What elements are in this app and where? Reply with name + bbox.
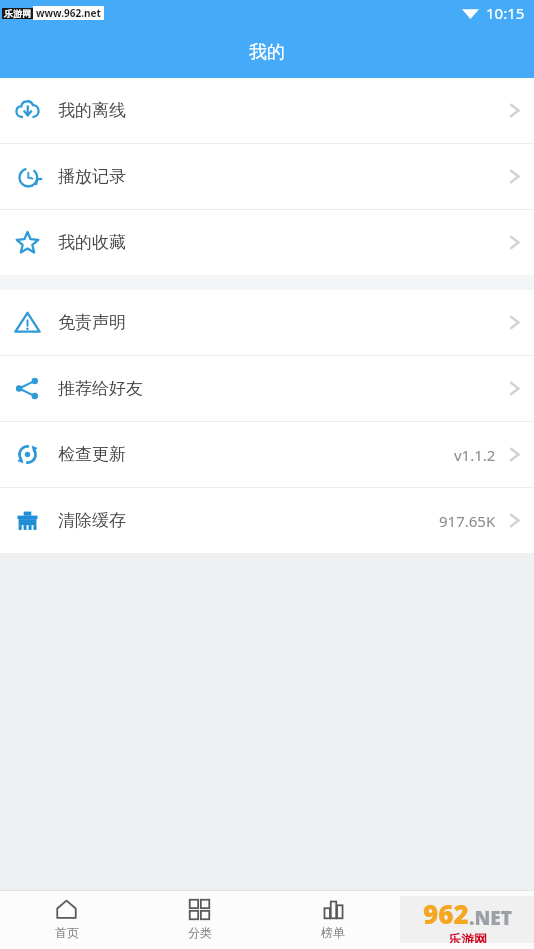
button[interactable]: 播放记录 (0, 144, 534, 209)
staticText: 乐游网 (448, 931, 487, 943)
staticText: 分类 (188, 925, 212, 940)
button[interactable]: 分类 (133, 890, 266, 949)
button[interactable]: 检查更新 (0, 422, 534, 487)
staticText: 我的离线 (58, 100, 126, 121)
button[interactable]: 榜单 (266, 890, 400, 949)
button[interactable]: 推荐给好友 (0, 356, 534, 421)
button[interactable]: 免责声明 (0, 290, 534, 355)
staticText: 推荐给好友 (58, 378, 143, 399)
button[interactable]: 清除缓存 (0, 488, 534, 553)
staticText: 检查更新 (58, 444, 126, 465)
button[interactable]: 我的离线 (0, 78, 534, 143)
staticText: www.962.net (36, 6, 101, 20)
staticText: 我的 (249, 41, 285, 64)
staticText: 我的收藏 (58, 232, 126, 253)
staticText: 免责声明 (58, 312, 126, 333)
staticText: 乐游网 (4, 8, 31, 19)
staticText: 清除缓存 (58, 510, 126, 531)
staticText: 10:15 (486, 3, 525, 23)
staticText: 播放记录 (58, 166, 126, 187)
staticText: .NET (469, 905, 512, 931)
staticText: 917.65K (439, 511, 496, 531)
staticText: 首页 (55, 925, 79, 940)
staticText: 962 (423, 896, 469, 931)
button[interactable]: 我的收藏 (0, 210, 534, 275)
staticText: 榜单 (321, 925, 345, 940)
button[interactable]: 首页 (0, 890, 133, 949)
staticText: 我的 (455, 925, 479, 940)
staticText: v1.1.2 (454, 445, 496, 465)
button[interactable]: 我的 (400, 890, 534, 949)
